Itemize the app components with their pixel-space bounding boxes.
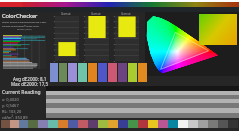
staticText: Gamut (91, 12, 101, 16)
staticText: Gamut (61, 12, 71, 16)
staticText: Display analysis is performed with the X… (2, 21, 47, 24)
button[interactable] (85, 16, 109, 61)
button[interactable] (115, 16, 139, 61)
staticText: cd/m²: 353,89 (2, 115, 28, 120)
staticText: Gamut (121, 12, 131, 16)
staticText: ColorChecker (2, 12, 38, 20)
staticText: Pantone ColorChecker® target colors. (2, 25, 40, 28)
button[interactable] (55, 16, 79, 61)
staticText: y: 0,5467 (2, 103, 19, 108)
staticText: Avg dE2000: 8,1 (13, 76, 47, 82)
staticText: Current Reading (2, 89, 41, 96)
staticText: dE2000 (2000) (17, 28, 32, 31)
staticText: RL: 103,20 (2, 109, 22, 114)
staticText: x: 0,4020 (2, 97, 19, 102)
staticText: Max dE2000: 17,5 (11, 81, 49, 87)
